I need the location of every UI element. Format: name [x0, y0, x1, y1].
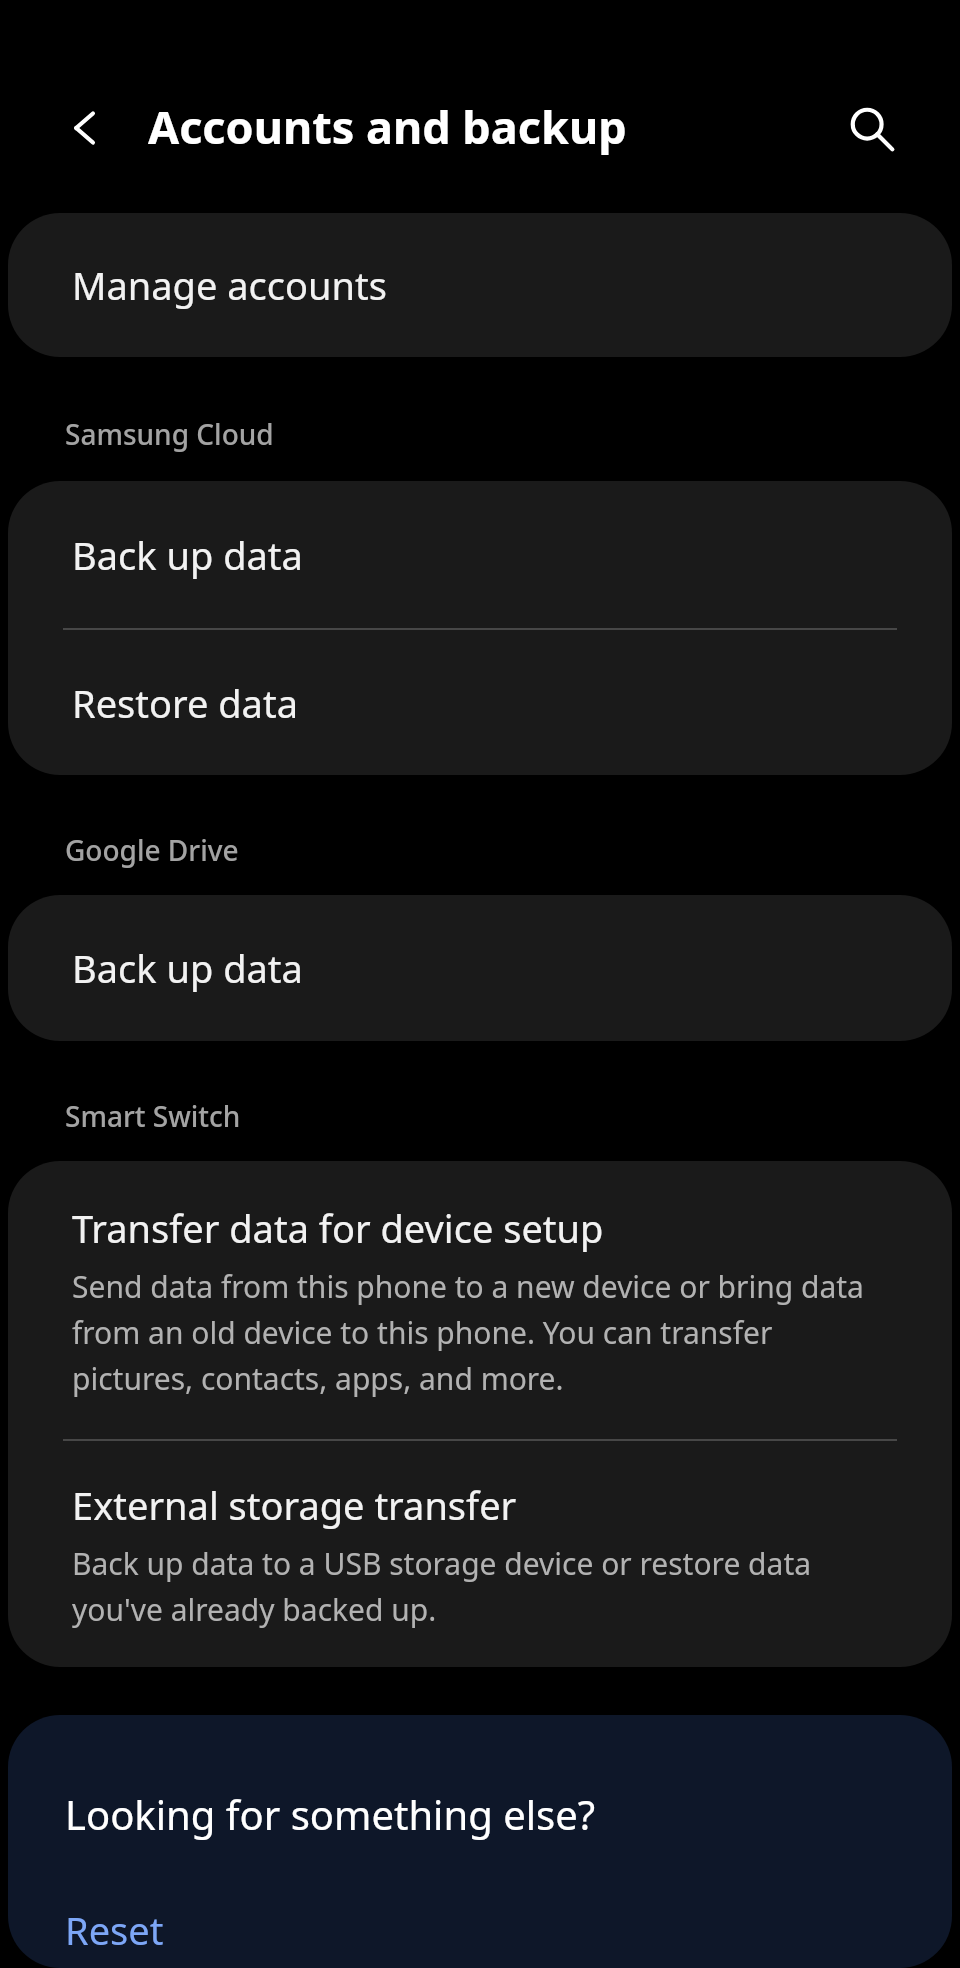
staticText: Looking for something else? — [65, 1787, 596, 1841]
staticText: Samsung Cloud — [65, 415, 274, 453]
button[interactable]: Restore data — [8, 630, 952, 775]
staticText: Send data from this phone to a new devic… — [72, 1266, 892, 1399]
button[interactable]: Back — [42, 85, 128, 171]
button[interactable]: Search — [828, 85, 914, 171]
staticText: Smart Switch — [65, 1097, 241, 1135]
button[interactable]: Transfer data for device setup — [8, 1161, 952, 1439]
staticText: Reset — [65, 1904, 164, 1956]
staticText: Transfer data for device setup — [72, 1202, 604, 1254]
staticText: Manage accounts — [72, 259, 387, 311]
staticText: Back up data — [72, 942, 303, 994]
button[interactable]: Reset — [8, 1891, 952, 1968]
button[interactable]: Back up data — [8, 481, 952, 628]
button[interactable]: Manage accounts — [8, 213, 952, 357]
button[interactable]: External storage transfer — [8, 1441, 952, 1667]
staticText: Back up data to a USB storage device or … — [72, 1543, 892, 1630]
staticText: Accounts and backup — [148, 96, 627, 157]
button[interactable]: Back up data — [8, 895, 952, 1041]
staticText: Restore data — [72, 677, 298, 729]
staticText: Google Drive — [65, 831, 239, 869]
staticText: External storage transfer — [72, 1479, 517, 1531]
staticText: Back up data — [72, 529, 303, 581]
